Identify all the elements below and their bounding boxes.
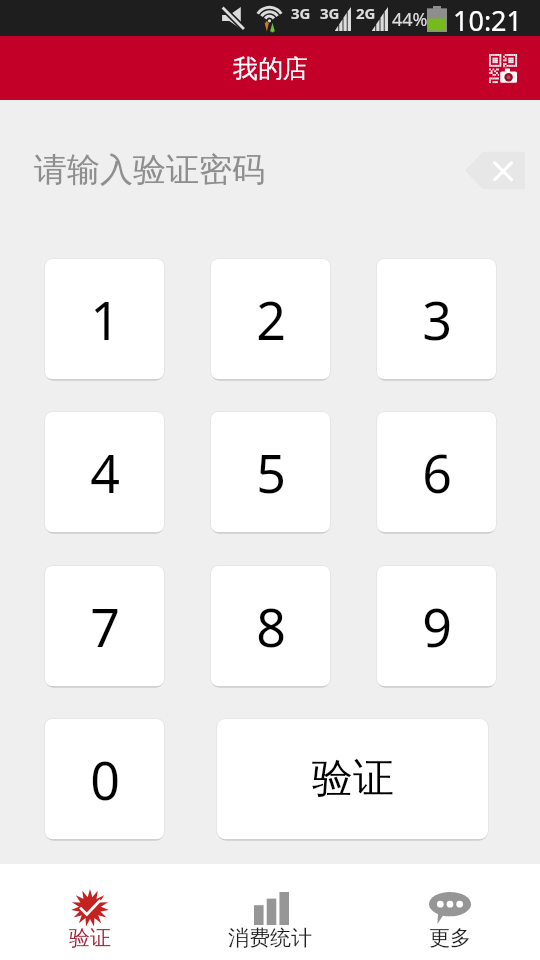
staticText: 验证 xyxy=(69,925,111,951)
staticText: 3G xyxy=(320,3,340,23)
button[interactable]: 0 xyxy=(45,719,164,839)
button[interactable]: 8 xyxy=(211,566,330,686)
button[interactable]: 7 xyxy=(45,566,164,686)
staticText: 8 xyxy=(256,591,286,662)
staticText: 0 xyxy=(90,744,120,815)
staticText: 4 xyxy=(90,437,120,508)
button[interactable]: Backspace xyxy=(465,150,525,190)
button[interactable]: 更多 xyxy=(360,864,540,960)
staticText: 更多 xyxy=(429,925,471,951)
button[interactable]: 2 xyxy=(211,259,330,379)
button[interactable]: 1 xyxy=(45,259,164,379)
staticText: 3G xyxy=(291,3,311,23)
button[interactable]: 5 xyxy=(211,412,330,532)
staticText: 3 xyxy=(422,284,452,355)
staticText: 消费统计 xyxy=(228,925,312,951)
button[interactable]: 验证 xyxy=(217,719,488,839)
staticText: 44% xyxy=(392,7,428,32)
button[interactable]: 9 xyxy=(377,566,496,686)
staticText: 请输入验证密码 xyxy=(34,149,265,191)
staticText: 9 xyxy=(422,591,452,662)
staticText: 2G xyxy=(356,3,376,23)
button[interactable]: 3 xyxy=(377,259,496,379)
staticText: 我的店 xyxy=(233,53,308,84)
staticText: 6 xyxy=(422,437,452,508)
button[interactable]: 6 xyxy=(377,412,496,532)
staticText: 验证 xyxy=(312,753,394,805)
button[interactable]: 4 xyxy=(45,412,164,532)
button[interactable]: Scan QR code xyxy=(478,43,528,93)
button[interactable]: 验证 xyxy=(0,864,180,960)
staticText: 2 xyxy=(256,284,286,355)
staticText: 1 xyxy=(90,284,120,355)
staticText: 7 xyxy=(90,591,120,662)
staticText: 10:21 xyxy=(453,2,523,38)
button[interactable]: 消费统计 xyxy=(180,864,360,960)
staticText: 5 xyxy=(256,437,286,508)
